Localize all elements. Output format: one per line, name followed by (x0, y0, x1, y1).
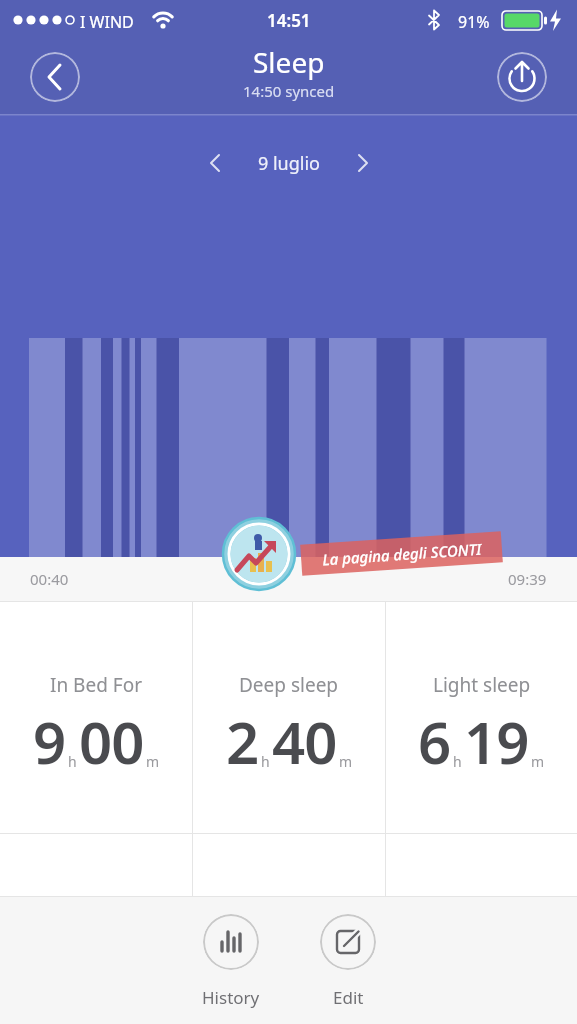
staticText: 00:40 (30, 569, 69, 589)
staticText: 91% (458, 11, 490, 33)
staticText: Sleep (253, 43, 325, 81)
button[interactable] (345, 145, 381, 181)
staticText: 00 (79, 702, 144, 781)
staticText: h (453, 752, 462, 771)
staticText: In Bed For (50, 672, 143, 698)
button[interactable]: 9 luglio (233, 145, 345, 181)
button[interactable] (197, 145, 233, 181)
staticText: 14:50 synced (243, 81, 335, 101)
staticText: 9 luglio (258, 151, 320, 176)
staticText: 19 (464, 702, 529, 781)
staticText: m (339, 752, 353, 771)
staticText: 14:51 (267, 9, 311, 32)
staticText: m (146, 752, 160, 771)
staticText: La pagina degli SCONTI (321, 538, 482, 569)
staticText: h (68, 752, 77, 771)
staticText: I WIND (80, 11, 134, 33)
staticText: 9 (33, 702, 66, 781)
button[interactable] (497, 52, 547, 102)
staticText: Deep sleep (239, 672, 339, 698)
staticText: 6 (418, 702, 451, 781)
button[interactable] (30, 52, 80, 102)
staticText: Edit (333, 986, 364, 1009)
staticText: 2 (226, 702, 259, 781)
staticText: m (531, 752, 545, 771)
staticText: h (261, 752, 270, 771)
staticText: 09:39 (508, 569, 547, 589)
button[interactable]: History (202, 914, 260, 1009)
staticText: History (202, 986, 260, 1009)
staticText: 40 (272, 702, 337, 781)
staticText: Light sleep (433, 672, 531, 698)
button[interactable]: Edit (320, 914, 376, 1009)
